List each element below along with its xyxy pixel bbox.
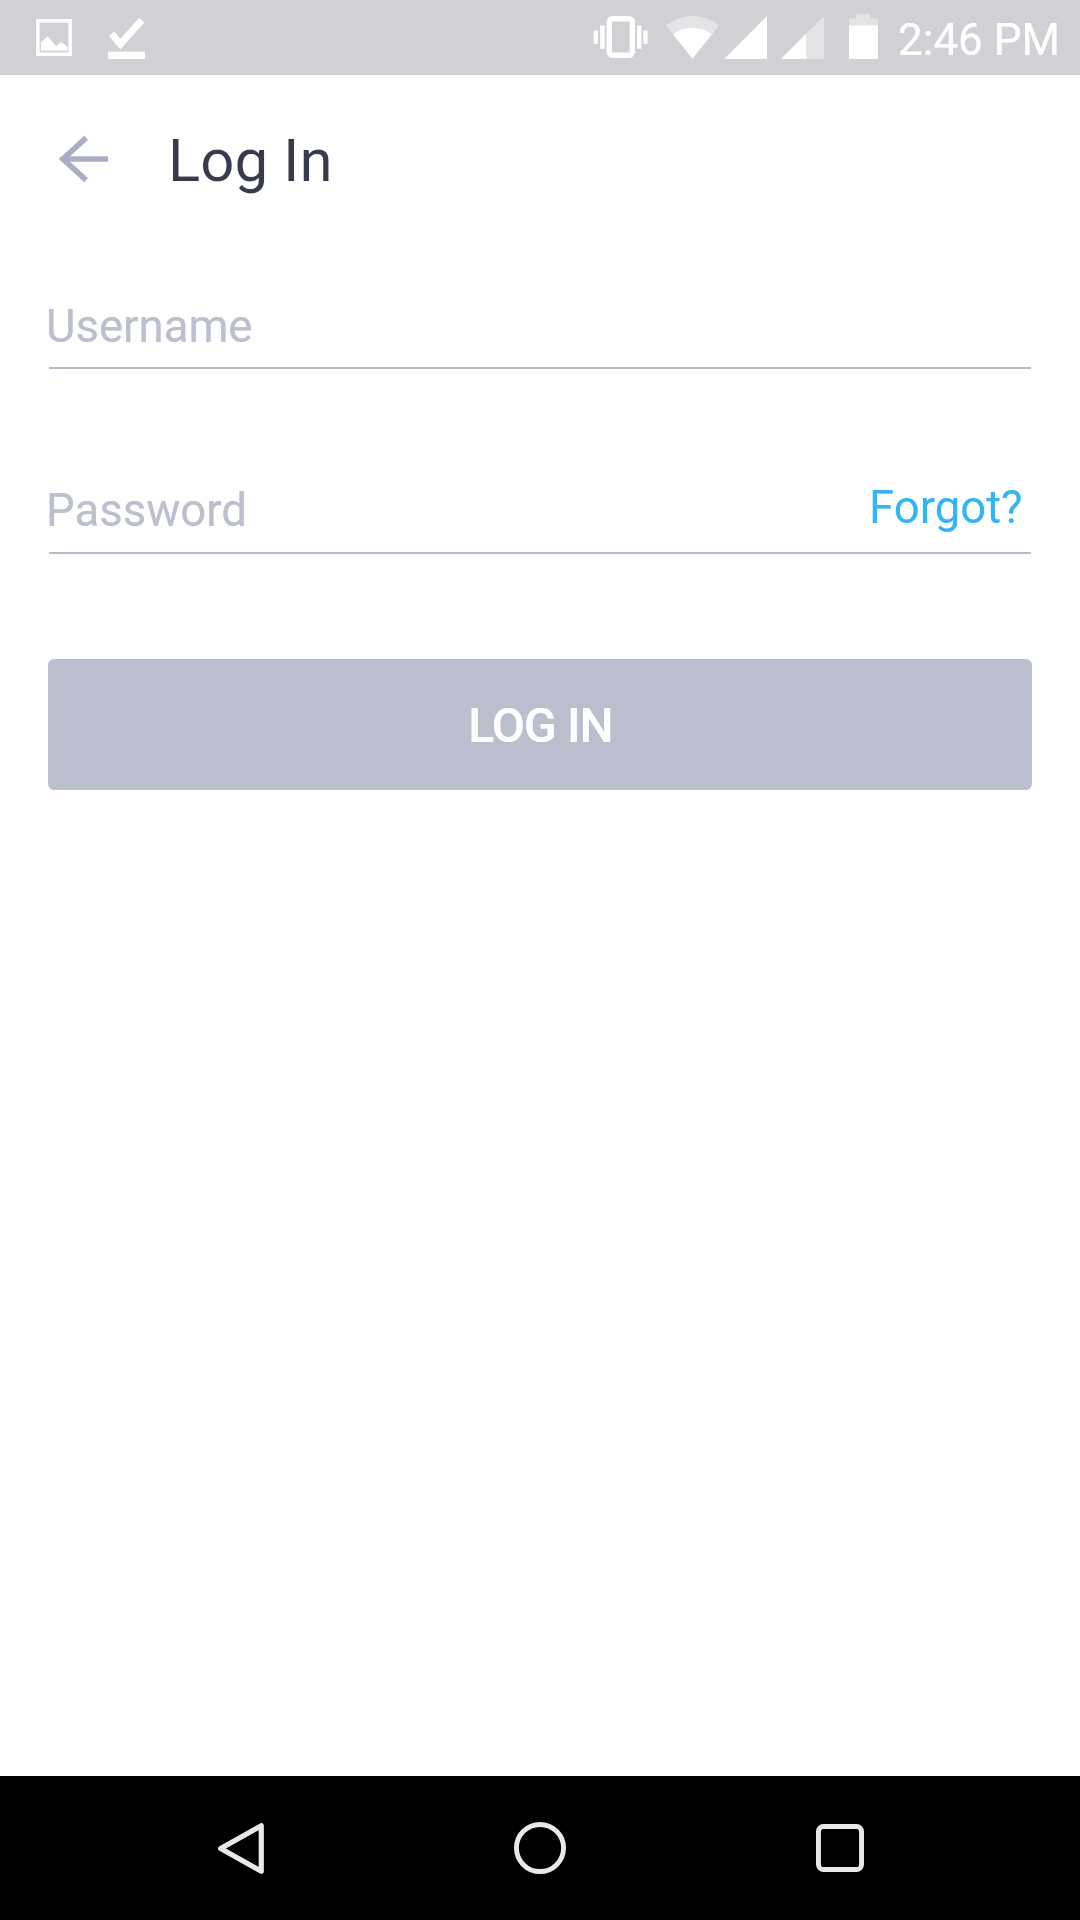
button[interactable]: Back <box>36 111 132 207</box>
staticText: Username <box>46 300 253 353</box>
staticText: Log In <box>168 125 333 195</box>
button[interactable]: LOG IN <box>48 659 1032 790</box>
staticText: LOG IN <box>468 697 613 753</box>
button[interactable]: Home <box>480 1800 600 1896</box>
button[interactable]: Recent apps <box>780 1800 900 1896</box>
staticText: Forgot? <box>869 481 1023 534</box>
button[interactable]: Forgot? <box>787 476 1023 538</box>
button[interactable]: Back <box>180 1800 300 1896</box>
staticText: Password <box>46 484 247 537</box>
staticText: 2:46 PM <box>898 14 1060 66</box>
